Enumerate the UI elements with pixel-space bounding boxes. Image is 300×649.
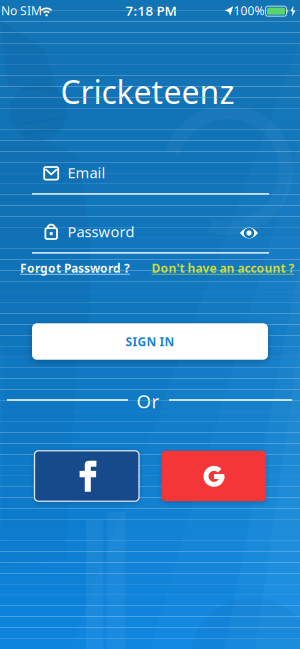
staticText: Don't have an account ? bbox=[151, 260, 294, 276]
staticText: Email bbox=[67, 163, 105, 182]
staticText: No SIM bbox=[1, 2, 42, 18]
button[interactable]: Forgot Password ? bbox=[20, 260, 130, 276]
staticText: SIGN IN bbox=[125, 333, 174, 349]
button[interactable]: Don't have an account ? bbox=[151, 260, 294, 276]
textField[interactable]: Password bbox=[32, 220, 269, 254]
staticText: Forgot Password ? bbox=[20, 260, 130, 276]
button[interactable]: Show password bbox=[237, 222, 261, 244]
button[interactable]: SIGN IN bbox=[32, 323, 268, 360]
button[interactable]: Sign in with Google bbox=[161, 451, 266, 501]
staticText: Password bbox=[67, 222, 134, 241]
staticText: Or bbox=[136, 389, 159, 413]
staticText: 100% bbox=[233, 2, 264, 18]
staticText: 7:18 PM bbox=[125, 2, 176, 19]
textField[interactable]: Email bbox=[32, 161, 269, 195]
staticText: Cricketeenz bbox=[60, 70, 234, 113]
button[interactable]: Sign in with Facebook bbox=[34, 451, 139, 501]
